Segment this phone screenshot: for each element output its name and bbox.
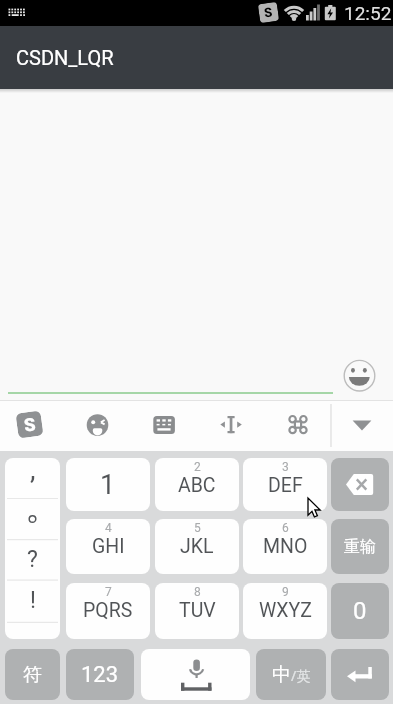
button[interactable] xyxy=(141,649,250,700)
staticText: CSDN_LQR xyxy=(16,46,114,69)
staticText: /英 xyxy=(291,666,311,685)
staticText: DEF xyxy=(268,474,303,497)
staticText: 4 xyxy=(105,521,112,535)
staticText: ! xyxy=(30,587,36,614)
button[interactable] xyxy=(274,402,322,450)
button[interactable] xyxy=(73,402,121,450)
button[interactable]: 中 xyxy=(256,649,326,700)
button[interactable] xyxy=(207,402,255,450)
staticText: 中 xyxy=(272,663,291,687)
staticText: 3 xyxy=(282,460,289,474)
staticText: 0 xyxy=(353,597,367,625)
staticText: , xyxy=(30,458,36,486)
button[interactable]: S xyxy=(15,410,44,439)
staticText: 5 xyxy=(194,521,201,535)
staticText: PQRS xyxy=(83,599,133,622)
staticText: 123 xyxy=(81,662,119,688)
staticText: 7 xyxy=(105,585,112,599)
button[interactable] xyxy=(338,402,386,450)
staticText: ? xyxy=(27,546,38,573)
staticText: 重输 xyxy=(344,537,376,557)
button[interactable]: 重输 xyxy=(331,519,389,574)
button[interactable] xyxy=(337,353,382,398)
button[interactable]: , xyxy=(5,458,60,639)
button[interactable] xyxy=(331,649,389,700)
staticText: 12:52 xyxy=(344,2,392,24)
staticText: 9 xyxy=(282,585,289,599)
staticText: TUV xyxy=(179,599,216,622)
staticText: ABC xyxy=(178,474,216,497)
staticText: S xyxy=(23,413,37,436)
staticText: S xyxy=(263,4,274,20)
staticText: 符 xyxy=(23,663,42,687)
button[interactable]: 2 xyxy=(155,458,239,511)
staticText: 2 xyxy=(194,460,201,474)
button[interactable]: 7 xyxy=(66,583,150,639)
button[interactable]: 9 xyxy=(243,583,327,639)
staticText: GHI xyxy=(92,535,125,558)
button[interactable]: 符 xyxy=(5,649,60,700)
button[interactable]: 8 xyxy=(155,583,239,639)
button[interactable]: 4 xyxy=(66,519,150,574)
button[interactable]: 123 xyxy=(66,649,134,700)
staticText: JKL xyxy=(180,535,214,558)
staticText: MNO xyxy=(263,535,308,558)
button[interactable]: 1 xyxy=(66,458,150,511)
button[interactable]: 5 xyxy=(155,519,239,574)
staticText: WXYZ xyxy=(259,599,312,622)
button[interactable]: 3 xyxy=(243,458,327,511)
staticText: 6 xyxy=(282,521,289,535)
button[interactable] xyxy=(331,458,389,511)
button[interactable]: 0 xyxy=(331,583,389,639)
staticText: 1 xyxy=(100,469,116,501)
staticText: 8 xyxy=(194,585,201,599)
button[interactable] xyxy=(139,402,187,450)
button[interactable]: 6 xyxy=(243,519,327,574)
